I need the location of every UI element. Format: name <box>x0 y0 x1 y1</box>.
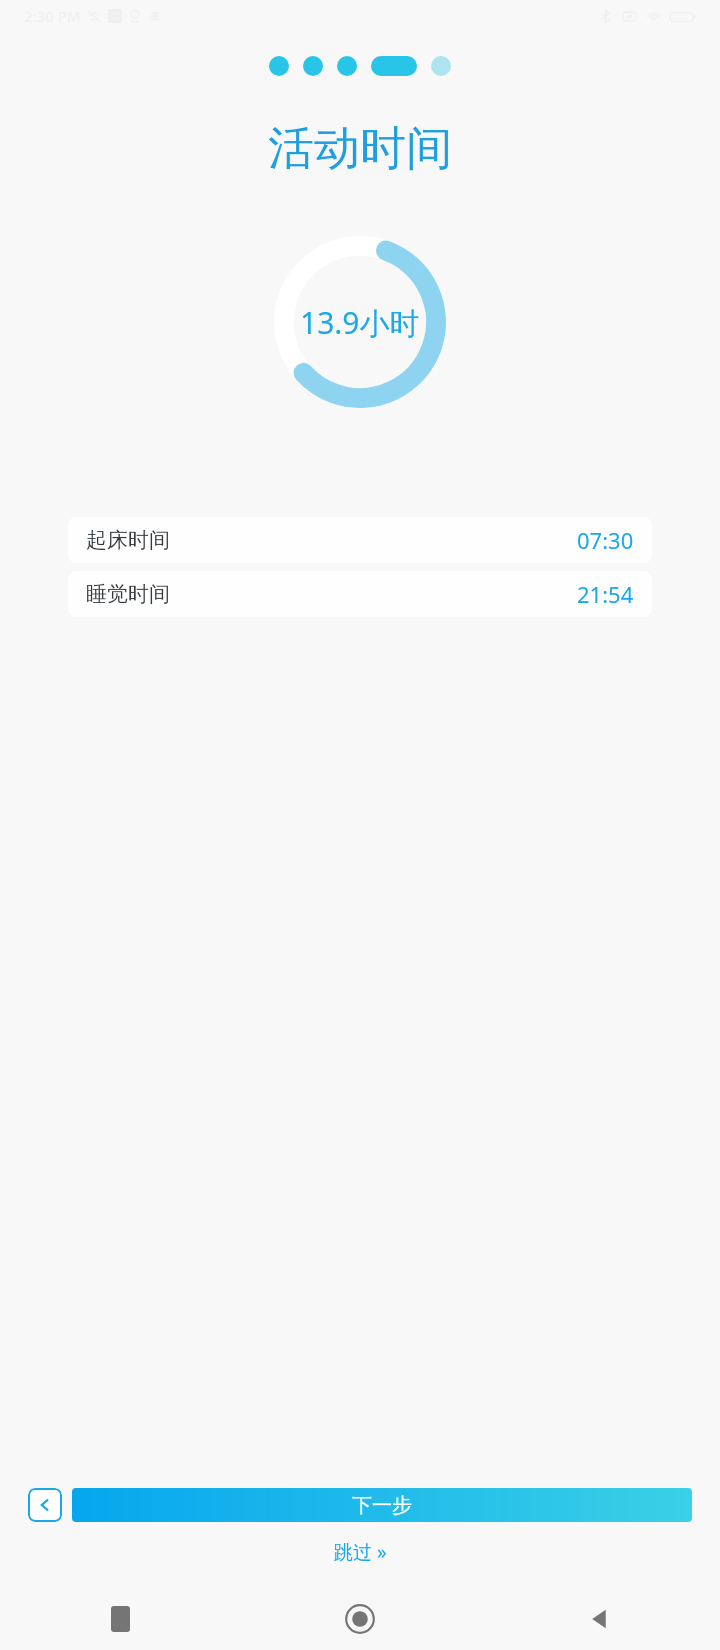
button[interactable]: Back <box>28 1488 62 1522</box>
button[interactable]: 起床时间 <box>68 517 652 563</box>
staticText: 下一步 <box>352 1493 412 1518</box>
button[interactable]: 跳过 » <box>322 1536 399 1568</box>
button[interactable]: 睡觉时间 <box>68 571 652 617</box>
staticText: 跳过 » <box>334 1539 387 1565</box>
staticText: 起床时间 <box>86 527 170 553</box>
staticText: 21:54 <box>577 579 634 609</box>
staticText: 13.9小时 <box>300 302 420 343</box>
button[interactable]: Recents <box>0 1588 240 1650</box>
staticText: 睡觉时间 <box>86 581 170 607</box>
staticText: 活动时间 <box>0 120 720 178</box>
button[interactable]: Back <box>480 1588 720 1650</box>
staticText: 07:30 <box>577 525 634 555</box>
button[interactable]: 下一步 <box>72 1488 692 1522</box>
button[interactable]: Home <box>240 1588 480 1650</box>
